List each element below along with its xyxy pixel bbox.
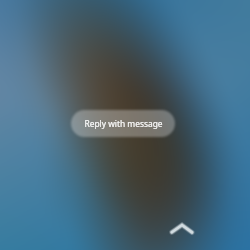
button[interactable]: Reply with message (71, 110, 175, 137)
button[interactable]: Show more (164, 212, 200, 248)
staticText: Reply with message (84, 118, 163, 129)
